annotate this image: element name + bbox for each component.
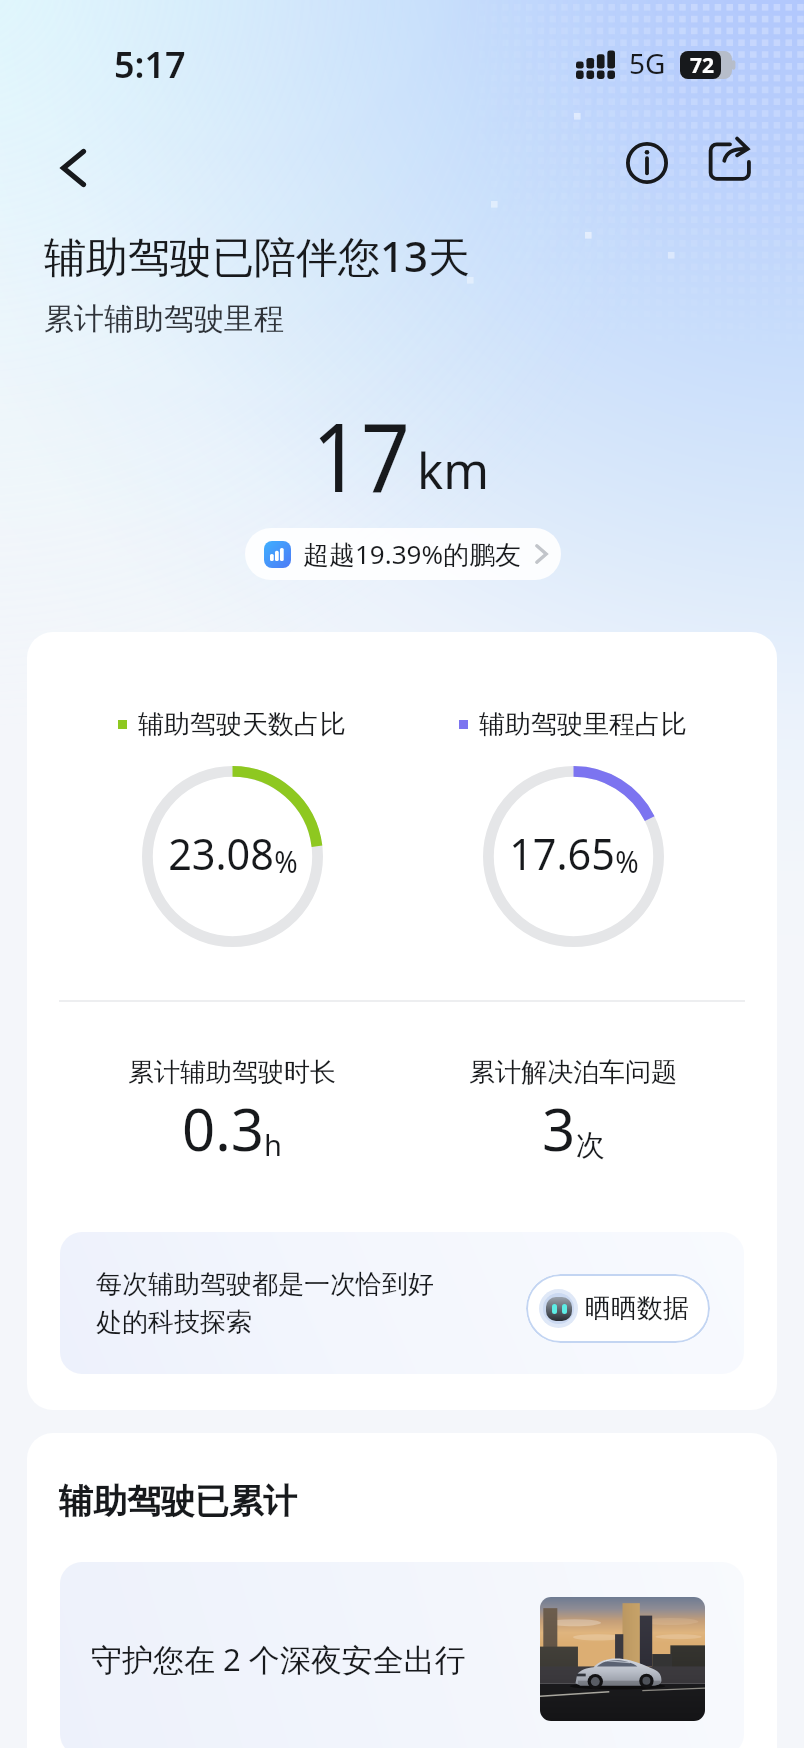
button[interactable]: Info (611, 127, 683, 199)
staticText: km (417, 437, 489, 504)
staticText: 每次辅助驾驶都是一次恰到好处的科技探索 (96, 1268, 446, 1339)
button[interactable]: Share (694, 126, 766, 198)
button[interactable]: 超越19.39%的鹏友 (245, 528, 561, 580)
staticText: 辅助驾驶已陪伴您13天 (44, 227, 471, 284)
staticText: h (264, 1125, 282, 1164)
staticText: 辅助驾驶天数占比 (138, 708, 346, 741)
staticText: % (274, 841, 298, 882)
staticText: 辅助驾驶里程占比 (479, 708, 687, 741)
staticText: 0.3 (182, 1089, 264, 1168)
staticText: 守护您在 2 个深夜安全出行 (91, 1638, 466, 1680)
staticText: % (615, 841, 639, 882)
staticText: 累计解决泊车问题 (469, 1056, 677, 1089)
staticText: 晒晒数据 (585, 1292, 689, 1325)
staticText: 72 (690, 51, 715, 79)
button[interactable]: Back (37, 132, 109, 204)
button[interactable]: 晒晒数据 (526, 1274, 710, 1343)
staticText: 累计辅助驾驶时长 (128, 1056, 336, 1089)
staticText: 23.08 (168, 823, 274, 883)
staticText: 5G (629, 44, 666, 74)
staticText: 累计辅助驾驶里程 (44, 300, 284, 338)
staticText: 超越19.39%的鹏友 (303, 536, 522, 572)
staticText: 17.65 (509, 823, 615, 883)
staticText: 次 (576, 1127, 605, 1164)
staticText: 辅助驾驶已累计 (59, 1480, 297, 1523)
staticText: 5:17 (114, 40, 186, 89)
staticText: 17 (312, 390, 410, 519)
staticText: 3 (542, 1089, 576, 1168)
